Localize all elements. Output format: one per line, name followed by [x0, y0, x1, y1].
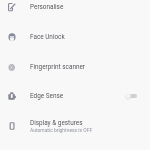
staticText: Fingerprint scanner: [30, 63, 86, 71]
button[interactable]: Personalise: [0, 0, 150, 22]
staticText: Display & gestures: [30, 119, 83, 127]
button[interactable]: Edge Sense: [0, 81, 150, 111]
button[interactable]: Face Unlock: [0, 22, 150, 52]
staticText: Automatic brightness is OFF: [30, 127, 93, 133]
button[interactable]: Fingerprint scanner: [0, 52, 150, 82]
staticText: Face Unlock: [30, 33, 65, 41]
button[interactable]: Edge Sense toggle: [125, 93, 137, 99]
staticText: Personalise: [30, 3, 64, 11]
staticText: Edge Sense: [30, 92, 64, 100]
button[interactable]: Display & gestures: [0, 111, 150, 141]
